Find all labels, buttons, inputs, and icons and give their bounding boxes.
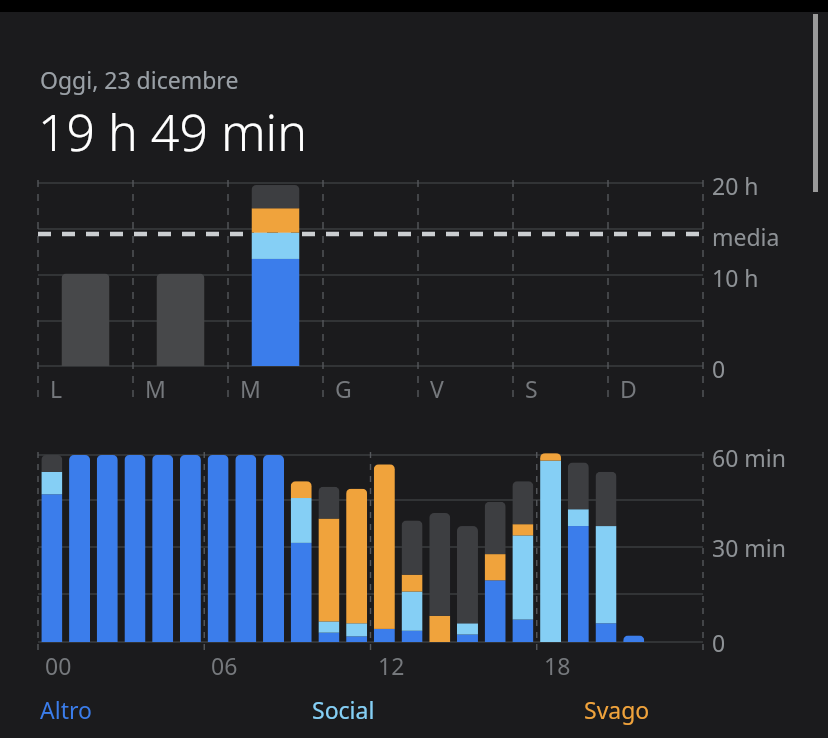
- staticText: 06: [211, 650, 238, 681]
- staticText: 0: [712, 627, 726, 658]
- staticText: L: [50, 373, 63, 404]
- staticText: 20 h: [712, 170, 759, 201]
- staticText: Altro: [40, 694, 92, 725]
- staticText: 30 min: [712, 532, 786, 563]
- staticText: 12: [378, 650, 405, 681]
- staticText: 0: [712, 353, 726, 384]
- staticText: 19 h 49 min: [38, 98, 307, 166]
- staticText: 60 min: [712, 442, 786, 473]
- staticText: G: [335, 373, 352, 404]
- staticText: V: [430, 373, 444, 404]
- staticText: M: [240, 373, 261, 404]
- staticText: media: [712, 221, 780, 252]
- staticText: S: [525, 373, 538, 404]
- button[interactable]: 60 min: [0, 452, 828, 680]
- button[interactable]: Altro: [0, 694, 276, 738]
- staticText: Svago: [584, 694, 650, 725]
- staticText: Oggi, 23 dicembre: [40, 64, 239, 95]
- staticText: D: [620, 373, 637, 404]
- button[interactable]: L: [0, 172, 828, 410]
- staticText: 18: [544, 650, 571, 681]
- staticText: Social: [312, 694, 375, 725]
- button[interactable]: Social: [276, 694, 552, 738]
- staticText: 10 h: [712, 262, 759, 293]
- staticText: 00: [45, 650, 72, 681]
- button[interactable]: Svago: [552, 694, 828, 738]
- staticText: M: [145, 373, 166, 404]
